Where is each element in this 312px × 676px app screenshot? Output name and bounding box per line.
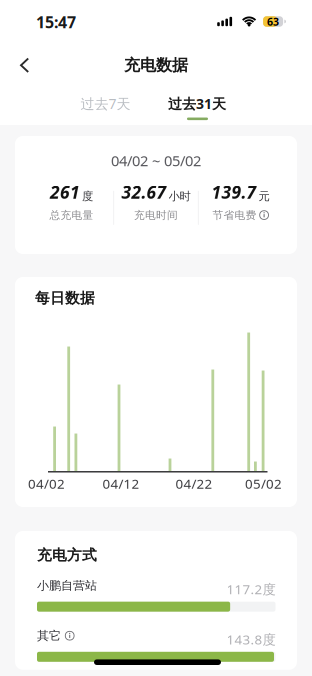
button[interactable]: 过去31天 — [164, 90, 230, 117]
staticText: 05/02 — [245, 474, 282, 493]
staticText: 143.8度 — [226, 630, 275, 648]
button[interactable]: 节省电费详情 — [259, 210, 269, 220]
staticText: 其它 — [37, 628, 61, 643]
staticText: 04/02 ~ 05/02 — [111, 150, 201, 170]
staticText: 充电时间 — [134, 208, 178, 222]
button[interactable]: 其它详情 — [61, 631, 74, 640]
staticText: 04/12 — [102, 474, 139, 493]
button[interactable]: 过去7天 — [76, 90, 134, 117]
staticText: 117.2度 — [226, 580, 275, 598]
staticText: 每日数据 — [35, 289, 95, 307]
staticText: 04/02 — [28, 474, 65, 493]
staticText: 过去7天 — [80, 94, 130, 113]
staticText: 总充电量 — [49, 208, 93, 222]
staticText: 15:47 — [36, 11, 76, 33]
staticText: 充电方式 — [37, 546, 97, 564]
staticText: 261 — [50, 180, 80, 204]
staticText: 小鹏自营站 — [37, 578, 97, 593]
staticText: 充电数据 — [124, 55, 188, 75]
staticText: 节省电费 — [212, 208, 256, 222]
staticText: 度 — [82, 189, 93, 203]
staticText: 139.7 — [212, 180, 257, 204]
staticText: 04/22 — [175, 474, 212, 493]
staticText: 元 — [259, 189, 270, 203]
staticText: 63 — [267, 14, 279, 29]
staticText: 小时 — [168, 189, 190, 203]
staticText: 过去31天 — [168, 94, 226, 113]
staticText: 32.67 — [121, 180, 166, 204]
button[interactable]: Back — [0, 57, 41, 73]
